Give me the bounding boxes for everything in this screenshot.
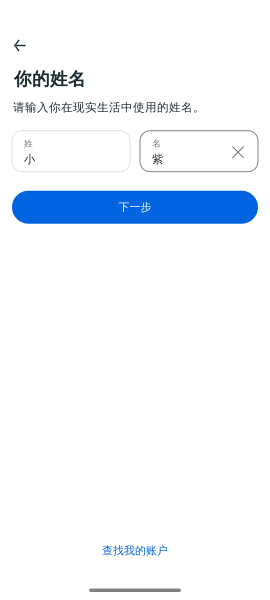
staticText: 小 [24, 152, 35, 166]
staticText: 请输入你在现实生活中使用的姓名。 [13, 100, 205, 115]
staticText: 名 [152, 138, 161, 149]
staticText: 下一步 [118, 200, 151, 214]
staticText: 查找我的账户 [102, 544, 168, 557]
staticText: 姓 [24, 138, 33, 149]
button[interactable]: 查找我的账户 [0, 540, 270, 560]
button[interactable]: Back [0, 34, 38, 57]
staticText: 紫 [152, 152, 163, 166]
staticText: 你的姓名 [14, 68, 86, 90]
button[interactable]: 下一步 [12, 191, 258, 224]
